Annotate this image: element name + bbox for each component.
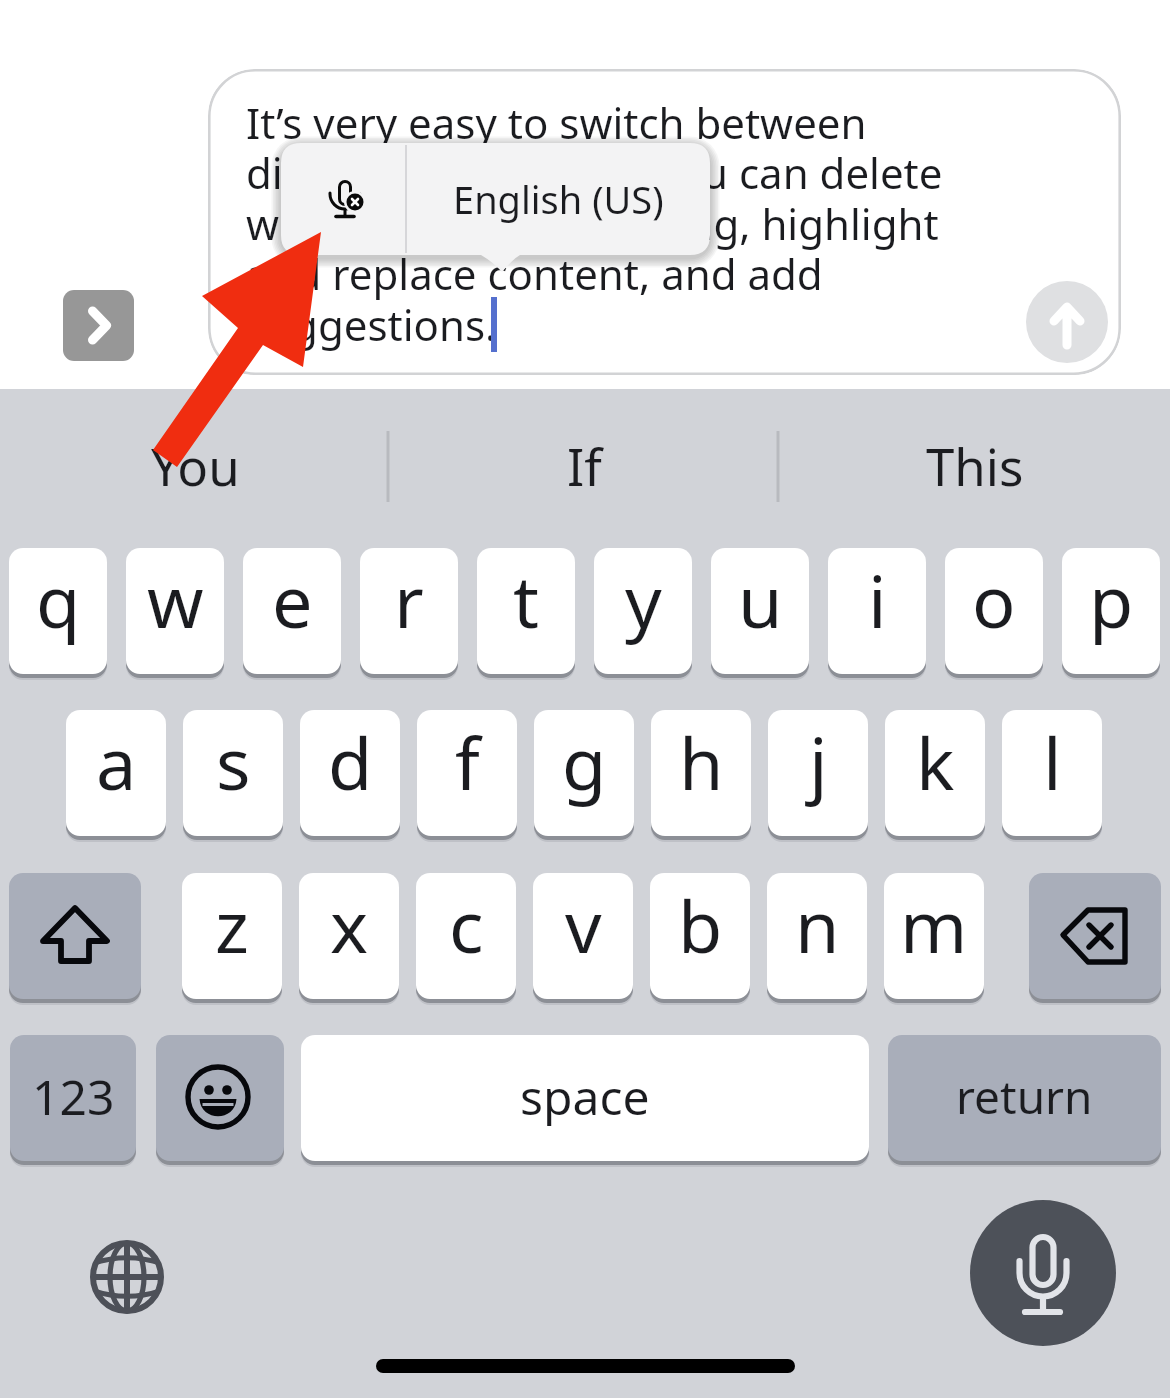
staticText: different languages. You can delete [246, 144, 943, 201]
button[interactable]: m [884, 873, 984, 999]
button[interactable]: You [15, 402, 375, 529]
staticText: and replace content, and add [246, 245, 823, 302]
staticText: i [868, 551, 887, 649]
button[interactable]: Backspace [1029, 873, 1161, 999]
staticText: d [328, 713, 373, 811]
button[interactable]: h [651, 710, 751, 836]
staticText: English (US) [453, 173, 664, 225]
button[interactable] [208, 69, 1121, 375]
button[interactable]: k [885, 710, 985, 836]
button[interactable]: Emoji [156, 1035, 284, 1161]
button[interactable]: t [477, 548, 575, 674]
staticText: h [679, 713, 724, 811]
button[interactable]: Mute dictation [281, 143, 406, 255]
staticText: space [520, 1064, 650, 1129]
staticText: m [900, 876, 968, 974]
staticText: You [151, 431, 240, 500]
staticText: y [625, 551, 662, 649]
staticText: a [96, 713, 137, 811]
staticText: p [1089, 551, 1134, 649]
button[interactable]: Change keyboard language [87, 1237, 167, 1317]
button[interactable]: d [300, 710, 400, 836]
staticText: r [394, 551, 424, 649]
button[interactable]: j [768, 710, 868, 836]
button[interactable]: space [301, 1035, 869, 1161]
staticText: j [809, 713, 828, 811]
button[interactable]: f [417, 710, 517, 836]
button[interactable]: q [9, 548, 107, 674]
button[interactable]: Expand [63, 290, 134, 361]
button[interactable]: x [299, 873, 399, 999]
staticText: n [795, 876, 840, 974]
staticText: g [562, 713, 607, 811]
staticText: q [36, 551, 81, 649]
button[interactable]: v [533, 873, 633, 999]
staticText: c [449, 876, 484, 974]
staticText: v [565, 876, 602, 974]
staticText: e [272, 551, 313, 649]
staticText: b [678, 876, 723, 974]
button[interactable]: return [888, 1035, 1161, 1161]
button[interactable]: r [360, 548, 458, 674]
button[interactable]: u [711, 548, 809, 674]
button[interactable]: o [945, 548, 1043, 674]
staticText: x [330, 876, 369, 974]
button[interactable]: c [416, 873, 516, 999]
staticText: l [1043, 713, 1062, 811]
staticText: If [567, 431, 602, 500]
button[interactable]: Dictation [970, 1200, 1116, 1346]
staticText: 123 [32, 1064, 115, 1129]
staticText: f [455, 713, 480, 811]
staticText: It’s very easy to switch between [246, 94, 867, 151]
staticText: z [215, 876, 249, 974]
staticText: s [216, 713, 251, 811]
button[interactable]: 123 [10, 1035, 136, 1161]
staticText: words by double-tapping, highlight [246, 195, 939, 252]
staticText: This [926, 431, 1024, 500]
staticText: o [972, 551, 1016, 649]
button[interactable]: s [183, 710, 283, 836]
button[interactable]: y [594, 548, 692, 674]
button[interactable]: p [1062, 548, 1160, 674]
staticText: t [513, 551, 539, 649]
button[interactable]: w [126, 548, 224, 674]
button[interactable]: Shift [9, 873, 141, 999]
button[interactable]: l [1002, 710, 1102, 836]
button[interactable]: b [650, 873, 750, 999]
button[interactable]: z [182, 873, 282, 999]
button[interactable]: a [66, 710, 166, 836]
staticText: w [147, 551, 204, 649]
staticText: u [738, 551, 783, 649]
button[interactable]: i [828, 548, 926, 674]
staticText: return [956, 1065, 1093, 1128]
staticText: k [916, 713, 955, 811]
button[interactable]: If [404, 402, 764, 529]
button[interactable]: This [795, 402, 1155, 529]
button[interactable]: g [534, 710, 634, 836]
button[interactable]: e [243, 548, 341, 674]
button[interactable]: n [767, 873, 867, 999]
button[interactable]: Send [1026, 281, 1108, 363]
staticText: suggestions. [246, 296, 497, 353]
button[interactable]: English (US) [406, 143, 710, 255]
